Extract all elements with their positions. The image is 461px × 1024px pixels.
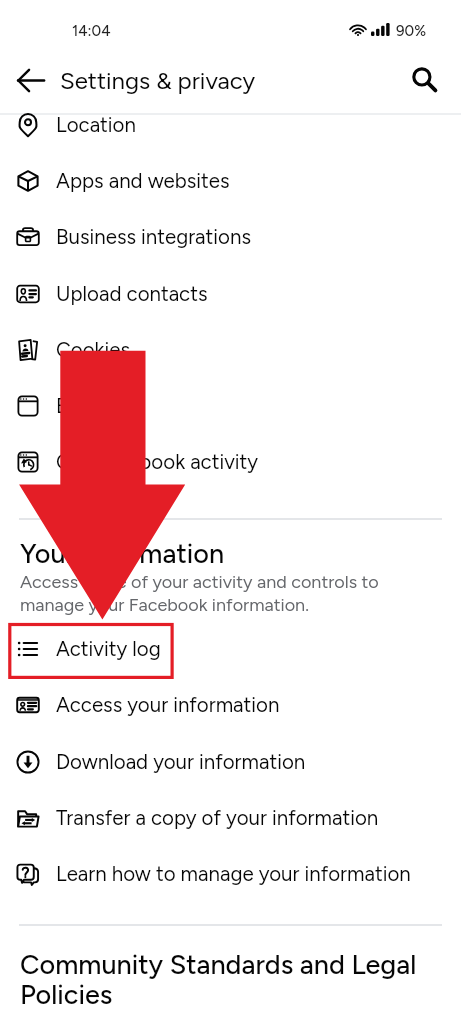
staticText: Location [56,113,136,138]
button[interactable]: Cookies [0,322,461,378]
staticText: 14:04 [72,22,111,40]
staticText: Cookies [56,338,131,363]
staticText: Access some of your activity and control… [20,571,380,616]
staticText: Your Information [20,537,225,569]
staticText: Transfer a copy of your information [56,806,379,831]
staticText: Upload contacts [56,282,208,307]
staticText: Browser [56,394,131,419]
button[interactable]: Learn how to manage your information [0,846,461,902]
button[interactable]: Back [2,52,58,108]
button[interactable]: Download your information [0,734,461,790]
button[interactable]: Business integrations [0,209,461,265]
button[interactable]: Upload contacts [0,266,461,322]
staticText: Business integrations [56,225,251,250]
button[interactable]: Transfer a copy of your information [0,790,461,846]
staticText: Apps and websites [56,169,230,194]
staticText: Access your information [56,693,280,718]
staticText: Download your information [56,750,306,775]
button[interactable]: Search [397,52,453,108]
button[interactable]: Apps and websites [0,153,461,209]
staticText: Off-Facebook activity [56,450,259,475]
button[interactable]: Activity log [0,621,461,677]
staticText: 90% [396,22,427,40]
button[interactable]: Browser [0,378,461,434]
button[interactable]: Access your information [0,677,461,733]
button[interactable]: Off-Facebook activity [0,434,461,490]
button[interactable]: Location [0,97,461,153]
staticText: Settings & privacy [60,66,256,95]
staticText: Community Standards and Legal Policies [20,948,445,1011]
staticText: Activity log [56,637,161,662]
staticText: Learn how to manage your information [56,862,411,887]
